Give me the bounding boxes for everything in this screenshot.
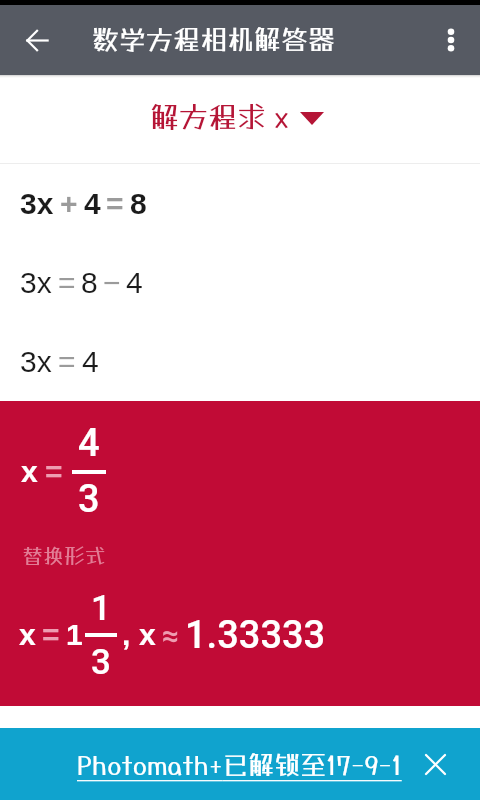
- staticText: 4: [78, 421, 100, 466]
- staticText: ≈: [162, 618, 180, 653]
- staticText: 8: [130, 187, 147, 221]
- staticText: 3: [91, 642, 111, 683]
- staticText: 3x: [20, 345, 52, 379]
- staticText: =: [58, 345, 76, 379]
- staticText: x: [21, 455, 38, 489]
- staticText: 4: [126, 266, 143, 300]
- button[interactable]: Photomath+已解锁至17-9-1: [0, 728, 480, 800]
- staticText: =: [45, 455, 63, 489]
- staticText: x: [139, 618, 156, 652]
- button[interactable]: Close: [412, 741, 458, 787]
- staticText: −: [103, 266, 121, 300]
- button[interactable]: 解方程求 x: [0, 73, 480, 161]
- staticText: 3: [78, 477, 100, 522]
- staticText: 1: [66, 618, 83, 652]
- staticText: 1.33333: [185, 613, 326, 658]
- staticText: Photomath+已解锁至17-9-1: [77, 749, 402, 780]
- staticText: 4: [82, 345, 99, 379]
- staticText: +: [60, 187, 78, 221]
- staticText: =: [106, 187, 124, 221]
- button[interactable]: Back: [8, 11, 66, 69]
- button[interactable]: 3x: [20, 332, 480, 392]
- staticText: 3x: [20, 187, 54, 221]
- button[interactable]: 3x: [20, 253, 480, 313]
- staticText: 解方程求 x: [150, 100, 290, 134]
- staticText: 1: [91, 588, 111, 629]
- staticText: 4: [84, 187, 101, 221]
- button[interactable]: More options: [422, 11, 480, 69]
- staticText: x: [19, 618, 36, 652]
- button[interactable]: 3x: [20, 174, 480, 234]
- staticText: =: [58, 266, 76, 300]
- staticText: ,: [122, 618, 131, 652]
- staticText: 8: [81, 266, 98, 300]
- staticText: 3x: [20, 266, 52, 300]
- staticText: 数学方程相机解答器: [92, 23, 335, 55]
- staticText: 替换形式: [22, 543, 106, 568]
- staticText: =: [42, 618, 60, 652]
